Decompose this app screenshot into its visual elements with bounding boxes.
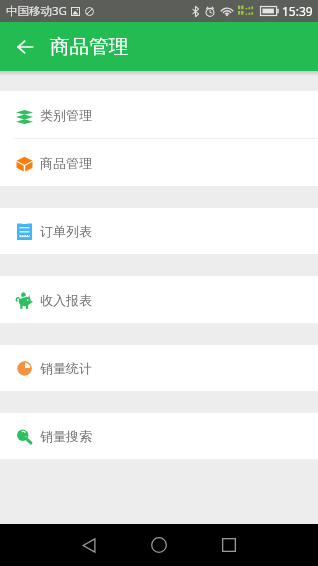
button[interactable]: Home [139,525,179,565]
staticText: 收入报表 [40,292,92,308]
staticText: 中国移动3G [6,3,67,19]
staticText: 商品管理 [50,34,128,59]
button[interactable]: 商品管理 [0,139,318,186]
staticText: 销量统计 [40,360,92,376]
button[interactable]: 销量统计 [0,345,318,391]
button[interactable]: 类别管理 [0,91,318,138]
staticText: 15:39 [282,3,313,19]
button[interactable]: 订单列表 [0,208,318,254]
button[interactable]: Recent apps [209,525,249,565]
button[interactable]: Back [69,525,109,565]
button[interactable]: Back [0,22,50,71]
button[interactable]: 收入报表 [0,276,318,323]
staticText: 订单列表 [40,223,92,239]
staticText: 商品管理 [40,155,92,171]
button[interactable]: 销量搜索 [0,413,318,459]
staticText: 销量搜索 [40,428,92,444]
staticText: 类别管理 [40,107,92,123]
